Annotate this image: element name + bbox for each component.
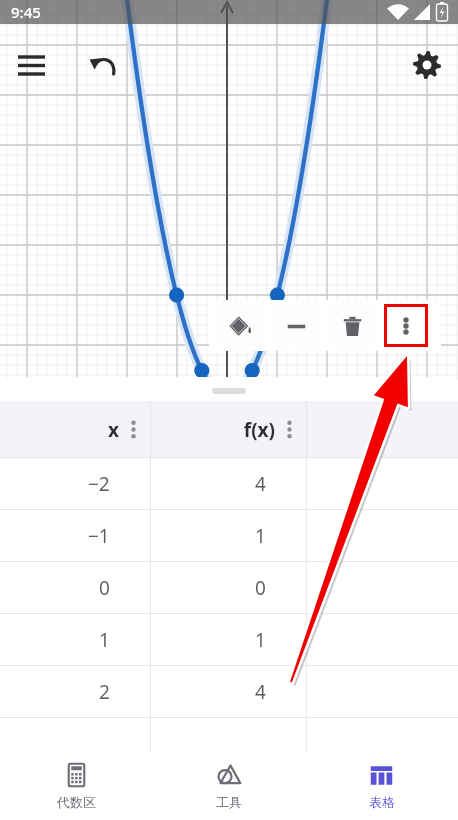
staticText: f(x)	[243, 417, 275, 443]
button[interactable]: Settings	[403, 41, 451, 89]
staticText: 代数区	[57, 794, 96, 810]
button[interactable]: 1	[151, 614, 306, 666]
button[interactable]	[307, 718, 458, 770]
button[interactable]: Line style	[272, 305, 321, 347]
button[interactable]: Undo	[79, 41, 127, 89]
button[interactable]: 工具	[152, 752, 305, 820]
button[interactable]	[0, 718, 150, 770]
button[interactable]	[307, 614, 458, 666]
button[interactable]: 2	[0, 666, 150, 718]
button[interactable]: 表格	[305, 752, 458, 820]
staticText: 1	[255, 523, 266, 549]
button[interactable]	[307, 666, 458, 718]
staticText: −2	[88, 471, 110, 497]
button[interactable]	[307, 562, 458, 614]
button[interactable]: x	[0, 401, 150, 458]
button[interactable]: 4	[151, 666, 306, 718]
button[interactable]	[307, 458, 458, 510]
button[interactable]	[151, 718, 306, 770]
staticText: 1	[255, 627, 266, 653]
button[interactable]: 1	[0, 614, 150, 666]
button[interactable]: 1	[151, 510, 306, 562]
button[interactable]: 0	[151, 562, 306, 614]
button[interactable]	[307, 401, 458, 458]
staticText: 0	[255, 575, 266, 601]
button[interactable]: 0	[0, 562, 150, 614]
button[interactable]: −2	[0, 458, 150, 510]
staticText: 2	[99, 679, 110, 705]
button[interactable]: Delete	[328, 305, 377, 347]
button[interactable]: More options	[387, 307, 425, 344]
button[interactable]: f(x)	[151, 401, 306, 458]
staticText: x	[108, 417, 119, 443]
button[interactable]: Fill colour	[216, 305, 265, 347]
staticText: 4	[255, 471, 266, 497]
staticText: 1	[99, 627, 110, 653]
button[interactable]: Menu	[7, 41, 55, 89]
button[interactable]: 代数区	[0, 752, 152, 820]
button[interactable]	[307, 510, 458, 562]
staticText: −1	[88, 523, 110, 549]
staticText: 4	[255, 679, 266, 705]
button[interactable]: −1	[0, 510, 150, 562]
staticText: 表格	[369, 794, 395, 810]
staticText: 0	[99, 575, 110, 601]
button[interactable]: 4	[151, 458, 306, 510]
staticText: 工具	[216, 794, 242, 810]
staticText: 9:45	[11, 2, 41, 22]
